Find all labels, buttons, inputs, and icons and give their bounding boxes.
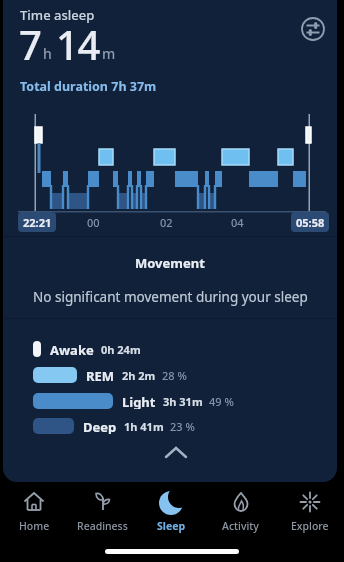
- staticText: Movement: [135, 254, 205, 272]
- button[interactable]: Activity: [206, 489, 275, 562]
- staticText: Total duration 7h 37m: [20, 78, 157, 95]
- staticText: h: [43, 44, 52, 63]
- button[interactable]: Home: [0, 489, 68, 562]
- staticText: REM: [86, 367, 115, 383]
- staticText: 04: [231, 215, 244, 230]
- staticText: m: [102, 44, 116, 63]
- staticText: 28 %: [162, 368, 187, 383]
- button[interactable]: Explore: [275, 489, 344, 562]
- staticText: 0h 24m: [101, 342, 141, 357]
- staticText: 1h 41m: [124, 419, 164, 434]
- staticText: Deep: [83, 418, 117, 434]
- button[interactable]: Readiness: [68, 489, 137, 562]
- staticText: Time asleep: [20, 6, 95, 24]
- staticText: Home: [19, 519, 50, 533]
- button[interactable]: Sleep: [137, 489, 206, 562]
- staticText: 3h 31m: [163, 394, 203, 409]
- staticText: 14: [56, 17, 99, 71]
- staticText: 7: [19, 17, 41, 71]
- staticText: 23 %: [170, 419, 195, 434]
- button[interactable]: [165, 446, 187, 460]
- staticText: 2h 2m: [122, 368, 156, 383]
- staticText: Activity: [222, 519, 259, 533]
- staticText: Explore: [291, 519, 329, 533]
- staticText: No significant movement during your slee…: [33, 288, 308, 306]
- staticText: 22:21: [23, 215, 52, 230]
- staticText: Light: [122, 393, 156, 409]
- button[interactable]: [299, 15, 327, 43]
- staticText: Readiness: [77, 519, 128, 533]
- staticText: 49 %: [209, 394, 234, 409]
- staticText: Sleep: [157, 519, 186, 533]
- staticText: 05:58: [296, 215, 325, 230]
- staticText: 00: [87, 215, 100, 230]
- staticText: Awake: [50, 341, 94, 357]
- staticText: 02: [160, 215, 173, 230]
